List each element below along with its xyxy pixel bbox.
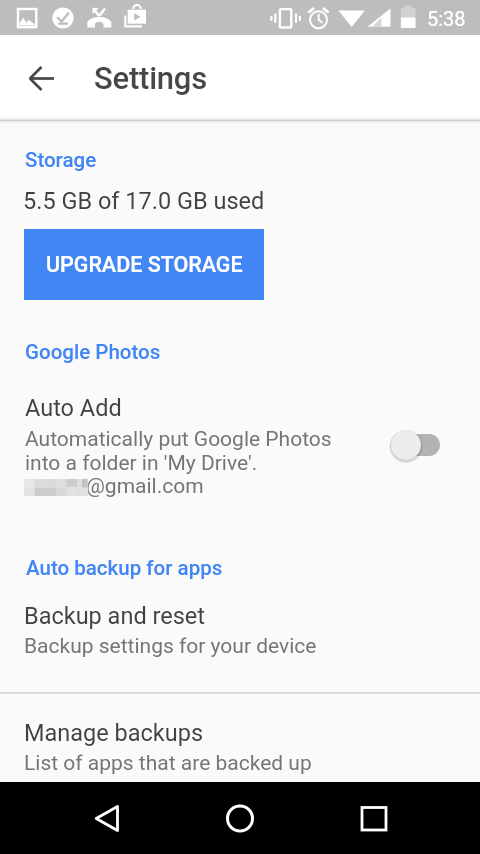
staticText: UPGRADE STORAGE (46, 252, 243, 277)
button[interactable]: Auto Add (390, 429, 444, 461)
button[interactable]: Auto Add (0, 385, 480, 503)
staticText: Backup settings for your device (24, 634, 317, 659)
staticText: Settings (94, 60, 208, 96)
staticText: Storage (25, 148, 97, 172)
staticText: Auto backup for apps (26, 556, 223, 580)
staticText: 5.5 GB of 17.0 GB used (23, 187, 265, 215)
staticText: 5:38 (427, 7, 466, 30)
button[interactable]: UPGRADE STORAGE (24, 229, 264, 300)
button[interactable]: Back (83, 795, 130, 842)
staticText: Automatically put Google Photos into a f… (25, 427, 332, 498)
staticText: Manage backups (24, 719, 204, 747)
button[interactable]: Manage backups (0, 700, 480, 782)
button[interactable]: Backup and reset (0, 596, 480, 688)
staticText: @gmail.com (86, 474, 204, 499)
staticText: Backup and reset (24, 602, 205, 630)
button[interactable]: Navigate up (18, 54, 66, 102)
button[interactable]: Recent apps (350, 795, 397, 842)
button[interactable]: Home (216, 795, 263, 842)
staticText: Auto Add (25, 394, 122, 422)
staticText: List of apps that are backed up (24, 751, 312, 776)
staticText: Google Photos (25, 340, 161, 364)
